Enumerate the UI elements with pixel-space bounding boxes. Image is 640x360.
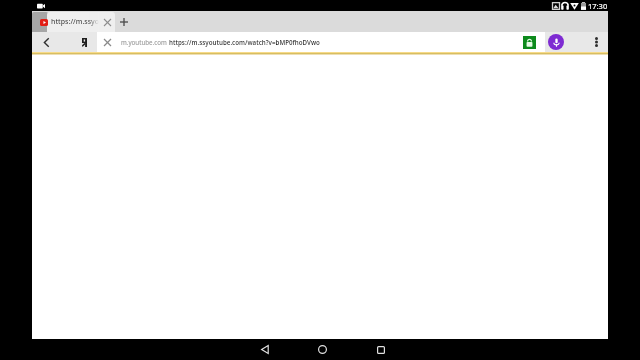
button[interactable]: Back — [36, 32, 56, 52]
button[interactable]: Voice search — [546, 32, 566, 52]
button[interactable] — [47, 12, 115, 32]
button[interactable]: Home — [310, 339, 334, 360]
button[interactable]: New tab — [117, 12, 131, 32]
button[interactable]: More options — [586, 32, 606, 52]
button[interactable]: Close tab — [100, 12, 114, 32]
staticText: 17:30 — [588, 1, 608, 11]
button[interactable]: Secure connection — [519, 32, 540, 52]
button[interactable]: Stop loading — [97, 32, 117, 52]
button[interactable]: Back — [253, 339, 277, 360]
staticText: https://m.ssyoutube — [51, 17, 99, 27]
button[interactable]: Recent apps — [369, 339, 393, 360]
staticText: m.youtube.com — [121, 38, 167, 46]
staticText: https://m.ssyoutube.com/watch?v=bMP0fhoD… — [169, 38, 320, 46]
button[interactable]: Yandex search — [74, 32, 94, 52]
